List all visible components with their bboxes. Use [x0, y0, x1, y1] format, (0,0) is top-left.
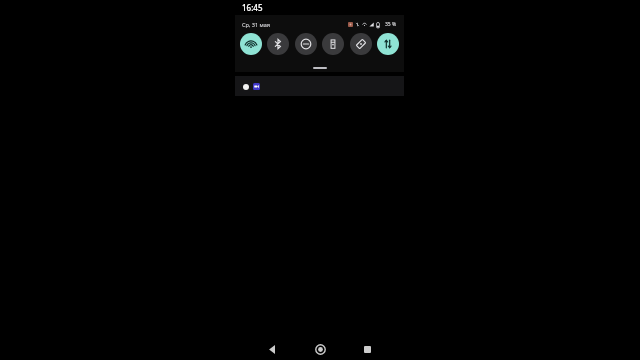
button[interactable]: Do not disturb — [295, 33, 317, 55]
button[interactable]: Mobile data — [377, 33, 399, 55]
button[interactable]: Wi-Fi — [240, 33, 262, 55]
button[interactable]: Auto-rotate — [350, 33, 372, 55]
button[interactable]: Bluetooth — [267, 33, 289, 55]
button[interactable] — [235, 76, 404, 96]
staticText: Ср, 31 мая — [242, 21, 270, 28]
button[interactable]: Recents — [357, 339, 377, 359]
staticText: 16:45 — [242, 2, 263, 13]
button[interactable]: Home — [310, 339, 330, 359]
button[interactable]: Flashlight — [322, 33, 344, 55]
staticText: 35 % — [385, 21, 397, 28]
button[interactable]: Back — [262, 339, 282, 359]
